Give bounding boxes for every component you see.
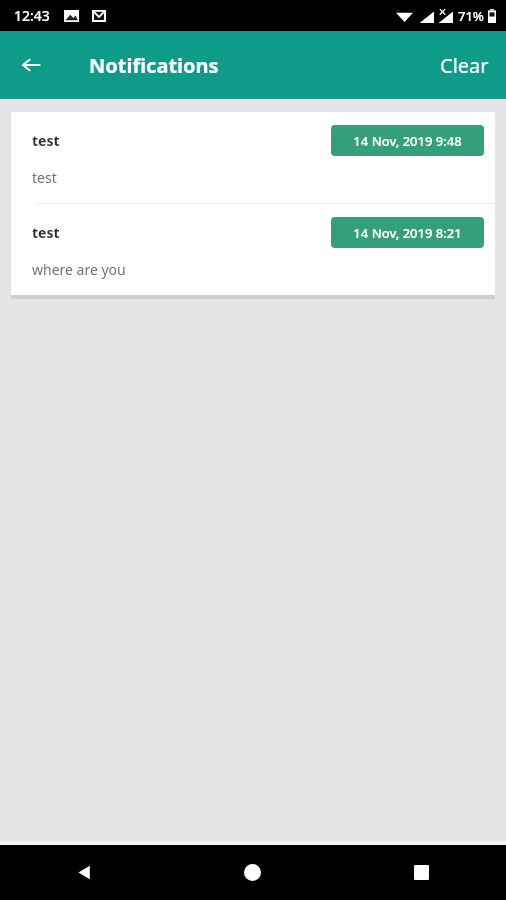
button[interactable]: Home [168, 845, 337, 900]
staticText: Clear [440, 52, 489, 79]
staticText: Notifications [89, 52, 219, 79]
staticText: 71% [458, 7, 484, 25]
staticText: where are you [32, 260, 126, 279]
staticText: 14 Nov, 2019 9:48 [353, 132, 462, 150]
button[interactable]: Recent apps [337, 845, 506, 900]
button[interactable]: Clear [423, 40, 506, 91]
staticText: test [32, 223, 60, 242]
button[interactable]: test [11, 112, 495, 203]
staticText: 12:43 [14, 6, 50, 25]
button[interactable]: Back [9, 43, 53, 87]
button[interactable]: test [11, 204, 495, 295]
staticText: test [32, 131, 60, 150]
button[interactable]: Back [0, 845, 168, 900]
staticText: 14 Nov, 2019 8:21 [353, 224, 462, 242]
staticText: test [32, 168, 57, 187]
